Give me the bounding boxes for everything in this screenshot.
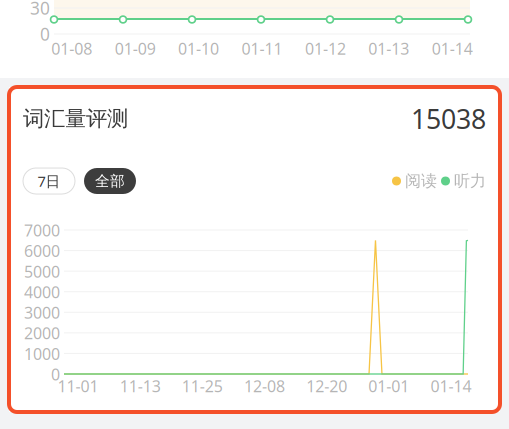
staticText: 30 xyxy=(30,0,50,19)
staticText: 3000 xyxy=(24,302,60,323)
staticText: 1000 xyxy=(24,343,60,364)
staticText: 0 xyxy=(40,22,50,45)
staticText: 0 xyxy=(51,364,60,385)
staticText: 12-20 xyxy=(306,375,347,397)
staticText: 01-14 xyxy=(430,375,471,397)
staticText: 01-12 xyxy=(305,38,346,59)
staticText: 7日 xyxy=(37,171,60,191)
button[interactable]: 全部 xyxy=(84,168,136,194)
staticText: 01-13 xyxy=(368,38,409,59)
staticText: 4000 xyxy=(24,281,60,303)
staticText: 01-08 xyxy=(51,38,92,59)
button[interactable]: 7日 xyxy=(23,168,75,194)
staticText: 15038 xyxy=(411,101,486,136)
staticText: 6000 xyxy=(24,240,60,261)
staticText: 全部 xyxy=(95,172,125,190)
staticText: 11-25 xyxy=(182,375,223,397)
staticText: 听力 xyxy=(454,171,486,191)
staticText: 01-10 xyxy=(178,38,219,59)
staticText: 01-09 xyxy=(115,38,156,59)
staticText: 7000 xyxy=(24,220,60,241)
staticText: 11-01 xyxy=(58,375,99,397)
staticText: 2000 xyxy=(24,322,60,344)
staticText: 词汇量评测 xyxy=(23,106,128,132)
staticText: 5000 xyxy=(24,261,60,282)
staticText: 11-13 xyxy=(120,375,161,397)
staticText: 12-08 xyxy=(244,375,285,397)
staticText: 阅读 xyxy=(405,171,437,191)
staticText: 01-01 xyxy=(368,375,409,397)
staticText: 01-14 xyxy=(432,38,473,59)
staticText: 01-11 xyxy=(241,38,282,59)
